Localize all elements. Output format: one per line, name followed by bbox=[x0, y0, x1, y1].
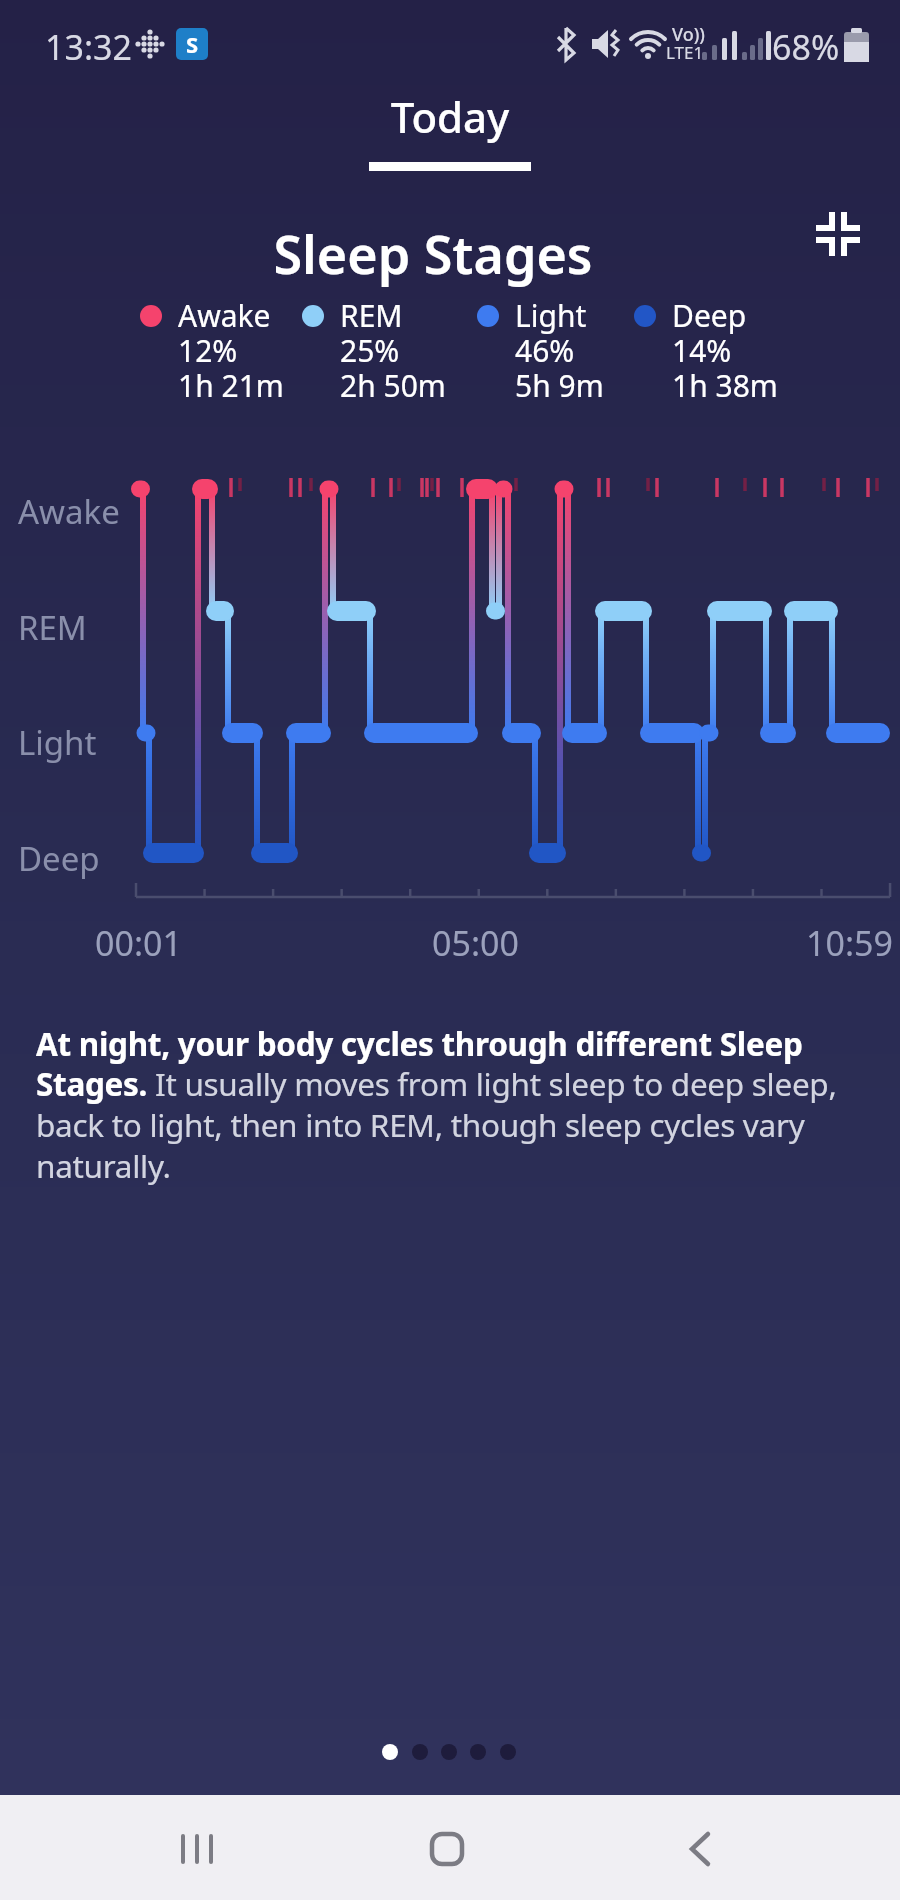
staticText: Awake bbox=[178, 295, 271, 336]
staticText: S bbox=[186, 29, 199, 59]
staticText: 5h 9m bbox=[515, 365, 604, 406]
staticText: 13:32 bbox=[45, 24, 132, 70]
staticText: Deep bbox=[672, 295, 747, 336]
staticText: REM bbox=[18, 605, 87, 650]
staticText: 00:01 bbox=[95, 920, 182, 966]
staticText: Awake bbox=[18, 489, 120, 534]
staticText: 46% bbox=[515, 330, 575, 371]
button[interactable] bbox=[688, 1832, 714, 1866]
button[interactable] bbox=[412, 1744, 428, 1760]
staticText: 2h 50m bbox=[340, 365, 446, 406]
staticText: Light bbox=[18, 720, 97, 765]
button[interactable] bbox=[441, 1744, 457, 1760]
staticText: 25% bbox=[340, 330, 400, 371]
button[interactable] bbox=[430, 1832, 464, 1866]
button[interactable] bbox=[302, 305, 324, 327]
button[interactable] bbox=[477, 305, 499, 327]
staticText: 1h 21m bbox=[178, 365, 284, 406]
staticText: 05:00 bbox=[432, 920, 519, 966]
button[interactable] bbox=[500, 1744, 516, 1760]
staticText: 10:59 bbox=[806, 920, 893, 966]
staticText: 14% bbox=[672, 330, 732, 371]
staticText: 1h 38m bbox=[672, 365, 778, 406]
staticText: Sleep Stages bbox=[0, 218, 883, 289]
staticText: Today bbox=[0, 88, 900, 145]
button[interactable] bbox=[140, 305, 162, 327]
staticText: Light bbox=[515, 295, 587, 336]
staticText: Vo)) bbox=[672, 22, 705, 47]
button[interactable] bbox=[634, 305, 656, 327]
staticText: 68% bbox=[772, 24, 840, 70]
button[interactable] bbox=[382, 1744, 398, 1760]
button[interactable] bbox=[470, 1744, 486, 1760]
staticText: 12% bbox=[178, 330, 238, 371]
button[interactable]: S bbox=[176, 28, 208, 60]
button[interactable] bbox=[816, 212, 860, 256]
staticText: At night, your body cycles through diffe… bbox=[36, 1022, 837, 1187]
button[interactable] bbox=[181, 1832, 215, 1866]
staticText: Deep bbox=[18, 836, 100, 881]
staticText: REM bbox=[340, 295, 403, 336]
staticText: LTE1 bbox=[666, 41, 704, 64]
button[interactable] bbox=[368, 90, 532, 172]
